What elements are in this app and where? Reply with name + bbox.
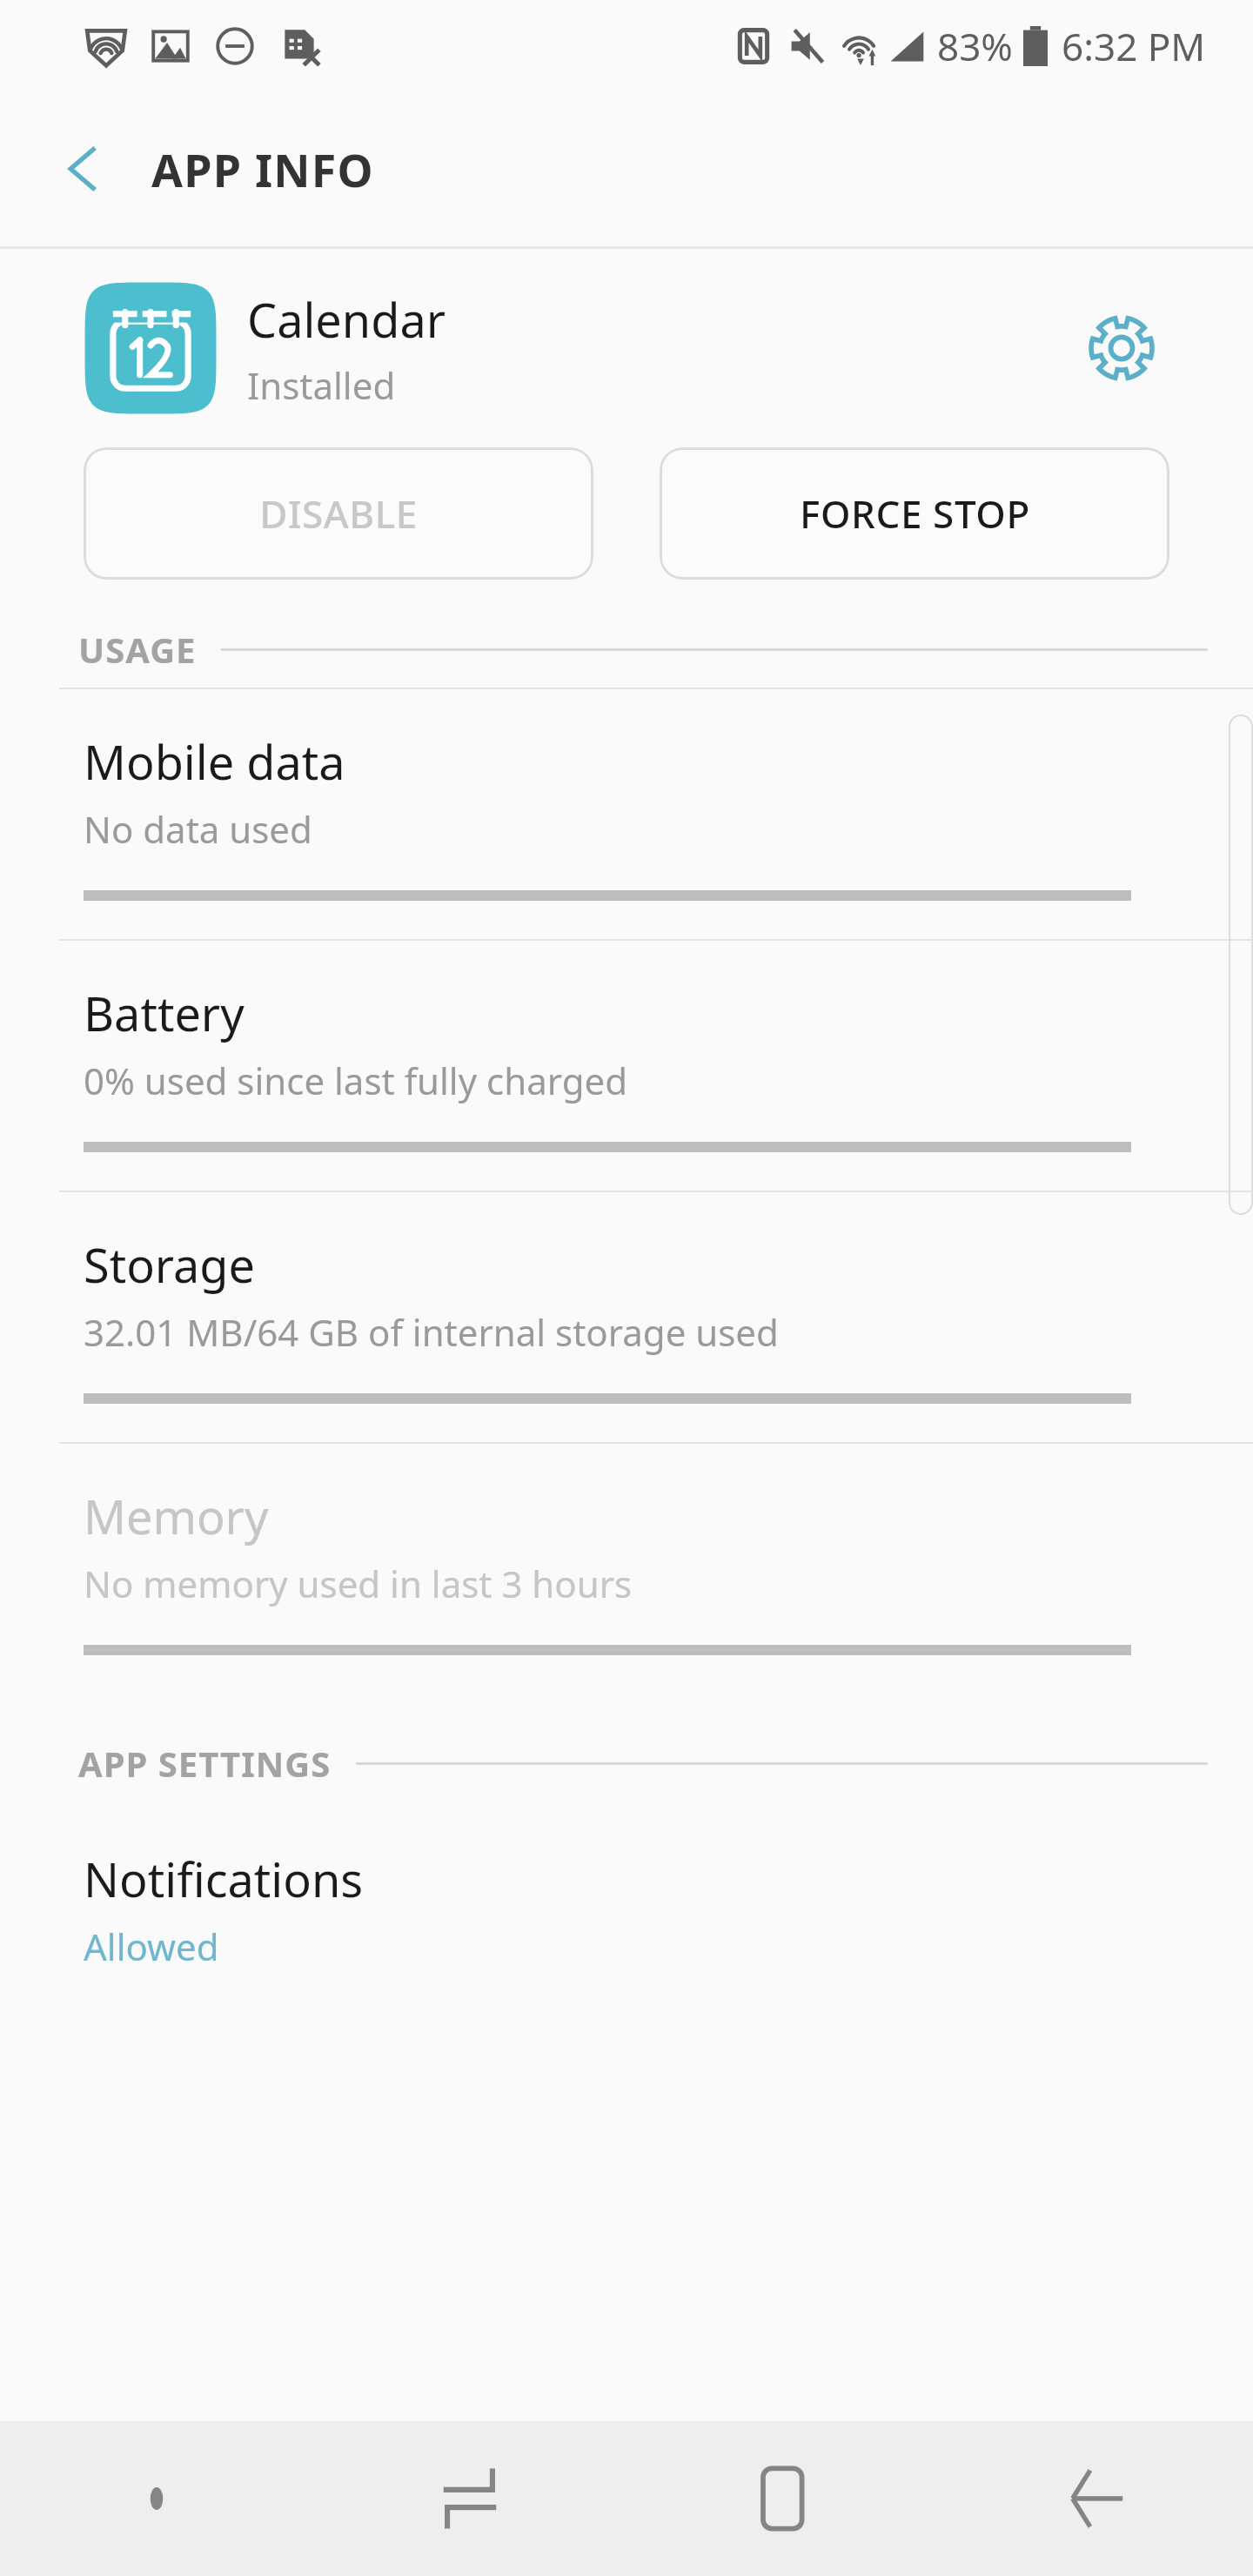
staticText: DISABLE bbox=[259, 487, 418, 540]
button[interactable]: Keyboard indicator bbox=[0, 2421, 313, 2576]
staticText: Notifications bbox=[84, 1847, 364, 1911]
button[interactable]: Back bbox=[42, 127, 125, 211]
staticText: USAGE bbox=[78, 626, 197, 673]
button[interactable]: Memory bbox=[0, 1442, 1253, 1694]
button[interactable]: Calendar bbox=[0, 249, 1253, 447]
staticText: APP INFO bbox=[151, 138, 374, 200]
staticText: Allowed bbox=[84, 1922, 219, 1971]
staticText: No memory used in last 3 hours bbox=[84, 1559, 633, 1608]
button[interactable]: Battery bbox=[0, 939, 1253, 1191]
button[interactable]: Back bbox=[940, 2421, 1253, 2576]
staticText: Storage bbox=[84, 1232, 255, 1297]
staticText: Mobile data bbox=[84, 729, 345, 794]
staticText: Battery bbox=[84, 981, 245, 1045]
staticText: APP SETTINGS bbox=[78, 1740, 332, 1787]
staticText: Installed bbox=[247, 360, 396, 410]
staticText: 0% used since last fully charged bbox=[84, 1056, 628, 1105]
button[interactable]: Recent apps bbox=[313, 2421, 626, 2576]
staticText: FORCE STOP bbox=[800, 487, 1030, 540]
staticText: Calendar bbox=[247, 287, 446, 352]
button[interactable]: Notifications bbox=[0, 1847, 1253, 1971]
button[interactable]: App settings bbox=[1074, 300, 1169, 396]
staticText: 6:32 PM bbox=[1062, 20, 1206, 72]
staticText: No data used bbox=[84, 804, 312, 854]
button[interactable]: Home bbox=[626, 2421, 940, 2576]
button[interactable]: DISABLE bbox=[84, 447, 593, 580]
button[interactable]: FORCE STOP bbox=[660, 447, 1169, 580]
staticText: 83% bbox=[937, 20, 1013, 72]
staticText: Memory bbox=[84, 1484, 269, 1548]
button[interactable]: Mobile data bbox=[0, 688, 1253, 939]
staticText: 32.01 MB/64 GB of internal storage used bbox=[84, 1307, 779, 1357]
button[interactable]: Storage bbox=[0, 1191, 1253, 1442]
